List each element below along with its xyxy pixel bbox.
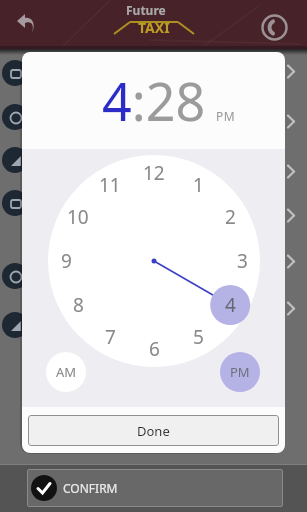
staticText: 4 — [225, 292, 236, 318]
staticText: TAXI — [138, 18, 170, 37]
button[interactable] — [0, 199, 307, 247]
staticText: 12 — [143, 160, 165, 186]
staticText: 4:28 PM — [102, 65, 236, 136]
button[interactable] — [259, 12, 289, 42]
button[interactable]: PM — [220, 352, 260, 392]
staticText: 7 — [105, 324, 116, 350]
staticText: CONFIRM — [63, 480, 118, 496]
button[interactable] — [0, 55, 307, 103]
staticText: PM — [230, 363, 250, 381]
button[interactable]: CONFIRM — [27, 469, 283, 507]
staticText: 5 — [193, 324, 204, 350]
button[interactable]: AM — [46, 352, 86, 392]
staticText: AM — [56, 363, 77, 381]
staticText: 2 — [225, 204, 236, 230]
staticText: 10 — [67, 204, 89, 230]
staticText: Done — [137, 422, 170, 440]
staticText: 8 — [73, 292, 84, 318]
staticText: 9 — [61, 248, 72, 274]
button[interactable]: Done — [28, 415, 279, 446]
button[interactable] — [0, 247, 307, 295]
staticText: 1 — [193, 172, 204, 198]
button[interactable] — [0, 151, 307, 199]
button[interactable] — [0, 103, 307, 151]
staticText: 11 — [99, 172, 121, 198]
button[interactable] — [0, 295, 307, 343]
button[interactable] — [8, 6, 46, 44]
staticText: 6 — [149, 336, 160, 362]
staticText: 3 — [237, 248, 248, 274]
staticText: Future — [126, 2, 166, 18]
